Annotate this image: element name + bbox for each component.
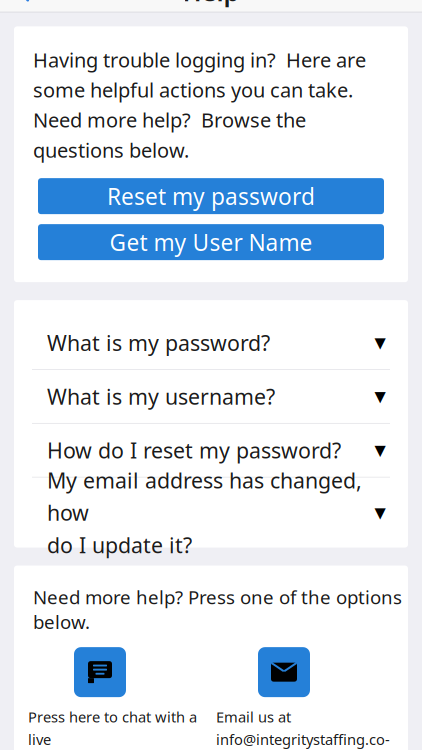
staticText: Having trouble logging in? Here are some…	[33, 46, 366, 163]
staticText: Need more help? Press one of the options…	[33, 585, 402, 634]
button[interactable]: Get my User Name	[38, 224, 384, 260]
staticText: My email address has changed, how do I u…	[47, 466, 362, 559]
button[interactable]: What is my password?	[14, 300, 408, 369]
staticText: ▼	[374, 442, 385, 458]
button[interactable]: How do I reset my password?	[14, 424, 408, 477]
button[interactable]: My email address has changed, how do I u…	[14, 478, 408, 548]
staticText: ▼	[374, 388, 385, 405]
button[interactable]: Reset my password	[38, 178, 384, 214]
button[interactable]: Email us at info@integritystaffing.com	[216, 647, 396, 750]
staticText: Get my User Name	[109, 227, 312, 257]
staticText: Email us at info@integritystaffing.com	[216, 707, 390, 750]
button[interactable]: What is my username?	[14, 370, 408, 423]
staticText: What is my username?	[47, 382, 275, 411]
staticText: What is my password?	[47, 328, 270, 357]
staticText: How do I reset my password?	[47, 436, 341, 464]
button[interactable]: Press here to chat with a live represent…	[28, 647, 216, 750]
button[interactable]: Back	[2, 0, 46, 12]
staticText: Reset my password	[107, 181, 315, 211]
staticText: Press here to chat with a live represent…	[28, 707, 197, 750]
staticText: ▼	[374, 334, 385, 351]
staticText: Help	[182, 0, 239, 8]
staticText: ▼	[374, 504, 385, 521]
